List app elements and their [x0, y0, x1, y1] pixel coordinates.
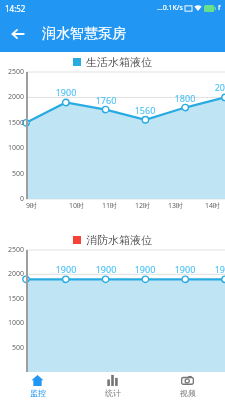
staticText: 1900	[132, 263, 158, 275]
staticText: 1000	[7, 318, 24, 328]
staticText: 统计	[105, 388, 121, 398]
staticText: 1900	[53, 263, 79, 275]
button[interactable]: 视频	[150, 372, 225, 400]
staticText: 1500	[7, 118, 24, 128]
button[interactable]: 统计	[75, 372, 150, 400]
staticText: 9时	[26, 201, 38, 211]
staticText: 1900	[172, 263, 198, 275]
staticText: 2000	[7, 92, 24, 102]
staticText: 1800	[172, 92, 198, 104]
staticText: 消防水箱液位	[86, 233, 152, 247]
staticText: 监控	[30, 388, 46, 398]
staticText: 视频	[180, 388, 196, 398]
staticText: 1760	[93, 94, 119, 106]
staticText: 1500	[7, 294, 24, 304]
staticText: f	[218, 3, 221, 13]
staticText: 1560	[132, 104, 158, 116]
staticText: 生活水箱液位	[86, 55, 152, 69]
staticText: 1900	[212, 263, 225, 275]
staticText: 14:52	[5, 3, 26, 14]
staticText: 12时	[135, 201, 151, 211]
button[interactable]: 监控	[0, 372, 75, 400]
button[interactable]: Back	[0, 16, 36, 52]
staticText: ...0.1K/s	[157, 3, 183, 13]
staticText: 13时	[168, 201, 184, 211]
staticText: 11时	[102, 201, 118, 211]
staticText: 1000	[7, 143, 24, 153]
staticText: 500	[11, 343, 24, 353]
staticText: 2500	[7, 245, 24, 255]
staticText: 14时	[205, 201, 221, 211]
staticText: 500	[11, 169, 24, 179]
staticText: 10时	[69, 201, 85, 211]
staticText: 1900	[53, 86, 79, 98]
staticText: 2000	[7, 269, 24, 279]
staticText: 0	[19, 194, 24, 204]
staticText: 2500	[7, 67, 24, 77]
staticText: 润水智慧泵房	[42, 25, 126, 43]
staticText: 2000	[212, 81, 225, 93]
staticText: 1900	[93, 263, 119, 275]
